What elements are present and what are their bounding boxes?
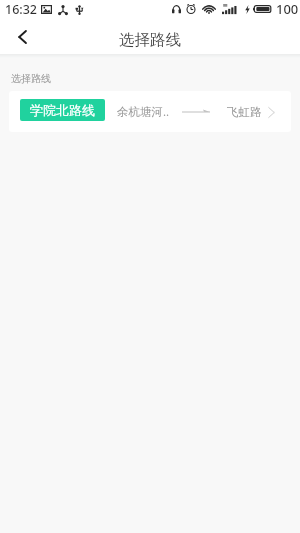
staticText: 学院北路线 (30, 102, 95, 118)
staticText: 飞虹路 (227, 105, 262, 119)
staticText: 余杭塘河.. (117, 104, 170, 120)
staticText: 100 (276, 0, 299, 18)
staticText: 选择路线 (11, 72, 51, 85)
staticText: 16:32 (5, 1, 38, 18)
button[interactable]: Back (0, 18, 45, 55)
staticText: 选择路线 (119, 30, 181, 50)
button[interactable]: 学院北路线 (9, 91, 291, 132)
